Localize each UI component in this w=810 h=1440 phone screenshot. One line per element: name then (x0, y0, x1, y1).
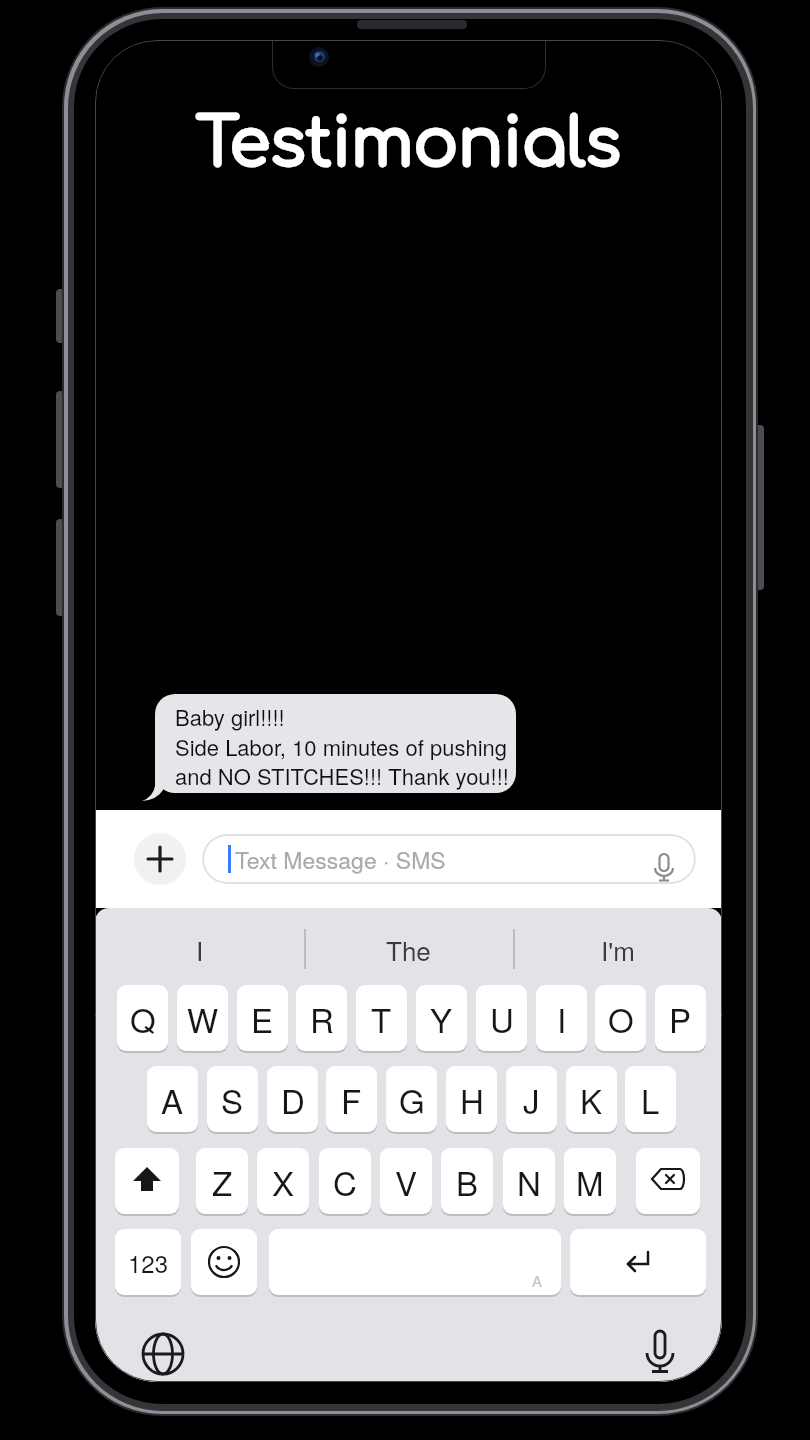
button[interactable] (135, 1326, 191, 1382)
button[interactable]: R (296, 985, 347, 1051)
button[interactable]: T (356, 985, 407, 1051)
staticText: G (399, 1076, 425, 1123)
button[interactable] (570, 1229, 706, 1295)
button[interactable]: X (257, 1148, 309, 1214)
button[interactable]: O (595, 985, 646, 1051)
staticText: U (490, 995, 514, 1042)
staticText: A (161, 1076, 184, 1123)
button[interactable]: W (177, 985, 228, 1051)
button[interactable] (191, 1229, 257, 1295)
staticText: I (196, 931, 204, 968)
staticText: 123 (128, 1245, 169, 1279)
button[interactable]: P (655, 985, 706, 1051)
button[interactable]: 123 (115, 1229, 181, 1295)
staticText: K (580, 1076, 603, 1123)
button[interactable]: L (625, 1066, 676, 1132)
button[interactable]: Y (416, 985, 467, 1051)
staticText: H (460, 1076, 484, 1123)
button[interactable]: J (506, 1066, 557, 1132)
staticText: Testimonials (196, 108, 621, 182)
button[interactable]: U (476, 985, 527, 1051)
staticText: W (187, 995, 219, 1042)
button[interactable]: Q (117, 985, 168, 1051)
button[interactable]: A (147, 1066, 198, 1132)
staticText: V (395, 1158, 418, 1205)
staticText: I'm (601, 931, 635, 968)
staticText: Baby girl!!!! Side Labor, 10 minutes of … (175, 701, 509, 791)
button[interactable]: N (503, 1148, 555, 1214)
staticText: N (517, 1158, 541, 1205)
button[interactable]: F (326, 1066, 377, 1132)
staticText: F (341, 1076, 362, 1123)
staticText: T (371, 995, 392, 1042)
button[interactable]: A (269, 1229, 561, 1295)
staticText: Y (430, 995, 453, 1042)
button[interactable]: V (380, 1148, 432, 1214)
staticText: R (310, 995, 334, 1042)
staticText: I (557, 995, 567, 1042)
staticText: B (456, 1158, 479, 1205)
staticText: D (281, 1076, 305, 1123)
button[interactable]: C (319, 1148, 371, 1214)
button[interactable]: Z (196, 1148, 248, 1214)
button[interactable]: B (441, 1148, 493, 1214)
staticText: C (333, 1158, 357, 1205)
staticText: Text Message · SMS (235, 843, 446, 876)
staticText: P (669, 995, 692, 1042)
button[interactable]: The (304, 921, 513, 977)
staticText: A (532, 1270, 543, 1291)
button[interactable]: G (386, 1066, 437, 1132)
staticText: The (386, 931, 431, 968)
staticText: Testimonials (196, 108, 621, 182)
button[interactable]: E (237, 985, 288, 1051)
button[interactable]: I (536, 985, 587, 1051)
staticText: M (576, 1158, 604, 1205)
button[interactable]: S (207, 1066, 258, 1132)
button[interactable]: Text Message · SMS (202, 834, 696, 884)
staticText: E (251, 995, 274, 1042)
button[interactable] (632, 1324, 688, 1380)
staticText: O (608, 995, 634, 1042)
button[interactable]: H (446, 1066, 497, 1132)
button[interactable] (115, 1148, 179, 1214)
staticText: X (272, 1158, 295, 1205)
button[interactable]: K (566, 1066, 617, 1132)
staticText: L (641, 1076, 660, 1123)
button[interactable]: D (267, 1066, 318, 1132)
button[interactable] (134, 833, 186, 885)
button[interactable]: I (95, 921, 304, 977)
button[interactable] (636, 1148, 700, 1214)
staticText: Q (130, 995, 156, 1042)
staticText: Z (212, 1158, 233, 1205)
staticText: J (523, 1076, 540, 1123)
button[interactable]: I'm (513, 921, 722, 977)
staticText: S (221, 1076, 244, 1123)
button[interactable]: M (564, 1148, 616, 1214)
